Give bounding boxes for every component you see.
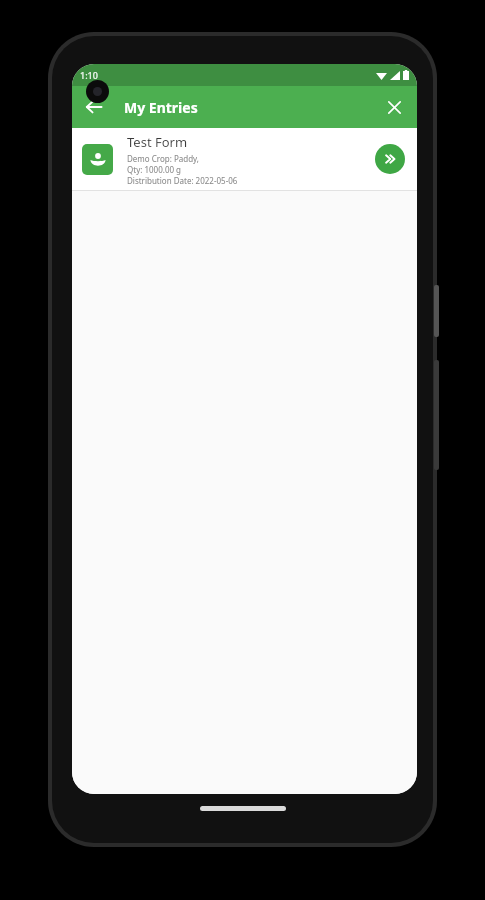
staticText: Distribution Date: 2022-05-06 [127,175,238,186]
button[interactable]: Close [377,90,411,124]
staticText: My Entries [124,98,198,117]
button[interactable]: Open entry [375,144,405,174]
staticText: Test Form [127,133,188,151]
button[interactable]: Back [76,89,112,125]
button[interactable]: Test Form [72,128,417,190]
staticText: Qty: 1000.00 g [127,164,182,175]
staticText: Demo Crop: Paddy, [127,153,200,164]
staticText: 1:10 [80,69,98,81]
